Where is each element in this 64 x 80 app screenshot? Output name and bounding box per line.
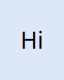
- staticText: Hi: [20, 25, 43, 55]
